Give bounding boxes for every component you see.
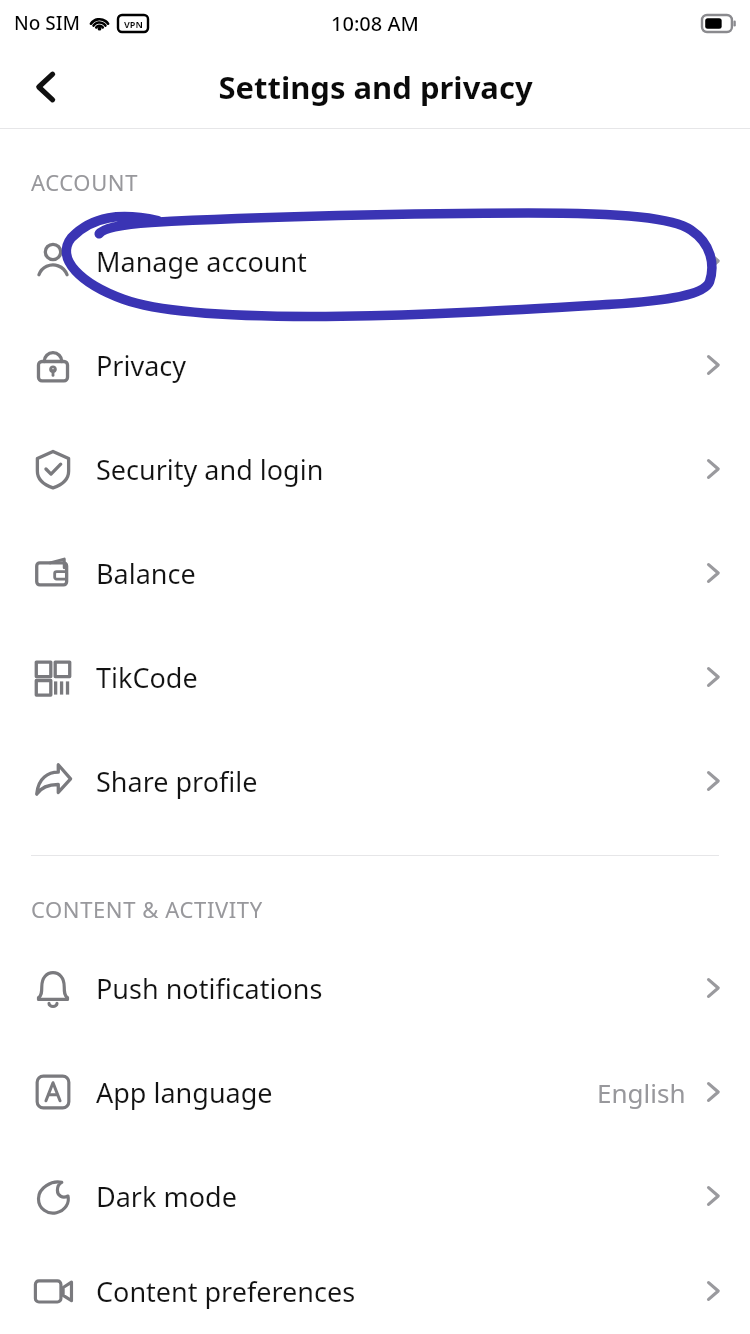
staticText: CONTENT & ACTIVITY xyxy=(31,894,263,924)
staticText: Settings and privacy xyxy=(218,66,533,108)
button[interactable]: Dark mode xyxy=(0,1144,750,1248)
button[interactable]: Balance xyxy=(0,521,750,625)
staticText: Manage account xyxy=(96,243,307,280)
staticText: No SIM xyxy=(14,10,80,36)
staticText: Push notifications xyxy=(96,970,323,1007)
button[interactable]: Security and login xyxy=(0,417,750,521)
staticText: TikCode xyxy=(96,659,198,696)
staticText: Security and login xyxy=(96,451,324,488)
staticText: Balance xyxy=(96,555,196,592)
button[interactable]: App language xyxy=(0,1040,750,1144)
staticText: 10:08 AM xyxy=(331,10,419,37)
staticText: Content preferences xyxy=(96,1273,356,1310)
staticText: Share profile xyxy=(96,763,258,800)
button[interactable]: Share profile xyxy=(0,729,750,833)
button[interactable]: Back xyxy=(18,59,74,115)
staticText: App language xyxy=(96,1074,273,1111)
staticText: VPN xyxy=(124,18,143,30)
staticText: Dark mode xyxy=(96,1178,237,1215)
button[interactable]: TikCode xyxy=(0,625,750,729)
button[interactable]: Push notifications xyxy=(0,936,750,1040)
staticText: ACCOUNT xyxy=(31,167,138,197)
staticText: Privacy xyxy=(96,347,187,384)
button[interactable]: Content preferences xyxy=(0,1248,750,1334)
staticText: English xyxy=(597,1075,686,1110)
button[interactable]: Privacy xyxy=(0,313,750,417)
button[interactable]: Manage account xyxy=(0,209,750,313)
